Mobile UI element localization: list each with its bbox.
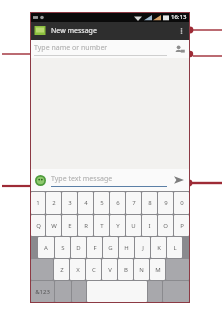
staticText: 8	[148, 199, 152, 207]
button[interactable]: 2	[46, 192, 61, 214]
button[interactable]: K	[151, 237, 166, 258]
staticText: New message	[51, 26, 97, 36]
staticText: 1	[36, 199, 40, 207]
button[interactable]: 9	[158, 192, 173, 214]
staticText: Type text message	[51, 174, 113, 184]
button[interactable]: E	[62, 215, 77, 236]
staticText: Z	[60, 266, 64, 274]
button[interactable]: W	[46, 215, 61, 236]
button[interactable]: Pick contact	[172, 42, 186, 56]
staticText: 5	[100, 199, 104, 207]
button[interactable]: Send	[172, 173, 186, 187]
staticText: C	[92, 266, 96, 274]
button[interactable]: Y	[110, 215, 125, 236]
button[interactable]: 5	[94, 192, 109, 214]
staticText: O	[163, 222, 168, 230]
button[interactable]: D	[71, 237, 86, 258]
button[interactable]: More options	[176, 22, 186, 40]
button[interactable]: G	[103, 237, 118, 258]
staticText: P	[180, 222, 184, 230]
button[interactable]: R	[78, 215, 93, 236]
button[interactable]	[30, 58, 190, 169]
button[interactable]: N	[134, 259, 149, 280]
staticText: S	[61, 244, 65, 252]
staticText: K	[157, 244, 161, 252]
button[interactable]: 4	[78, 192, 93, 214]
staticText: F	[93, 244, 97, 252]
staticText: 7	[132, 199, 136, 207]
staticText: W	[51, 222, 57, 230]
button[interactable]: V	[102, 259, 117, 280]
staticText: B	[124, 266, 128, 274]
button[interactable]: 6	[110, 192, 125, 214]
button[interactable]: C	[86, 259, 101, 280]
button[interactable]: M	[150, 259, 165, 280]
staticText: I	[148, 222, 151, 230]
button[interactable]: A	[38, 237, 54, 258]
staticText: U	[131, 222, 136, 230]
button[interactable]: 8	[142, 192, 157, 214]
button[interactable]: 7	[126, 192, 141, 214]
button[interactable]: Type name or number	[34, 43, 167, 56]
staticText: G	[108, 244, 113, 252]
button[interactable]: Insert emoticon	[34, 174, 47, 187]
staticText: 4	[84, 199, 88, 207]
button[interactable]: Type text message	[51, 174, 167, 187]
button[interactable]: L	[167, 237, 182, 258]
staticText: H	[124, 244, 129, 252]
button[interactable]: J	[135, 237, 150, 258]
button[interactable]: New message	[30, 22, 190, 40]
button[interactable]: T	[94, 215, 109, 236]
staticText: &123	[35, 288, 50, 296]
button[interactable]: O	[158, 215, 173, 236]
button[interactable]: F	[87, 237, 102, 258]
button[interactable]: 3	[62, 192, 77, 214]
staticText: Y	[116, 222, 120, 230]
button[interactable]: X	[70, 259, 85, 280]
staticText: D	[76, 244, 81, 252]
staticText: 3	[68, 199, 72, 207]
button[interactable]: Q	[31, 215, 45, 236]
button[interactable]: U	[126, 215, 141, 236]
staticText: 2	[52, 199, 56, 207]
staticText: Type name or number	[34, 43, 108, 53]
staticText: R	[84, 222, 88, 230]
button[interactable]: 1	[31, 192, 45, 214]
staticText: A	[44, 244, 48, 252]
button[interactable]: B	[118, 259, 133, 280]
staticText: V	[108, 266, 112, 274]
button[interactable]: P	[174, 215, 189, 236]
staticText: E	[68, 222, 72, 230]
button[interactable]: Z	[54, 259, 69, 280]
staticText: N	[139, 266, 144, 274]
staticText: 9	[164, 199, 168, 207]
button[interactable]: &123	[31, 281, 54, 302]
button[interactable]: I	[142, 215, 157, 236]
button[interactable]: 0	[174, 192, 189, 214]
button[interactable]: S	[55, 237, 70, 258]
staticText: X	[76, 266, 80, 274]
staticText: M	[155, 266, 161, 274]
staticText: 16:13	[171, 13, 187, 21]
staticText: 0	[180, 199, 184, 207]
staticText: L	[173, 244, 177, 252]
staticText: Q	[36, 222, 41, 230]
button[interactable]: H	[119, 237, 134, 258]
staticText: 6	[116, 199, 120, 207]
staticText: T	[100, 222, 104, 230]
staticText: J	[142, 244, 144, 252]
